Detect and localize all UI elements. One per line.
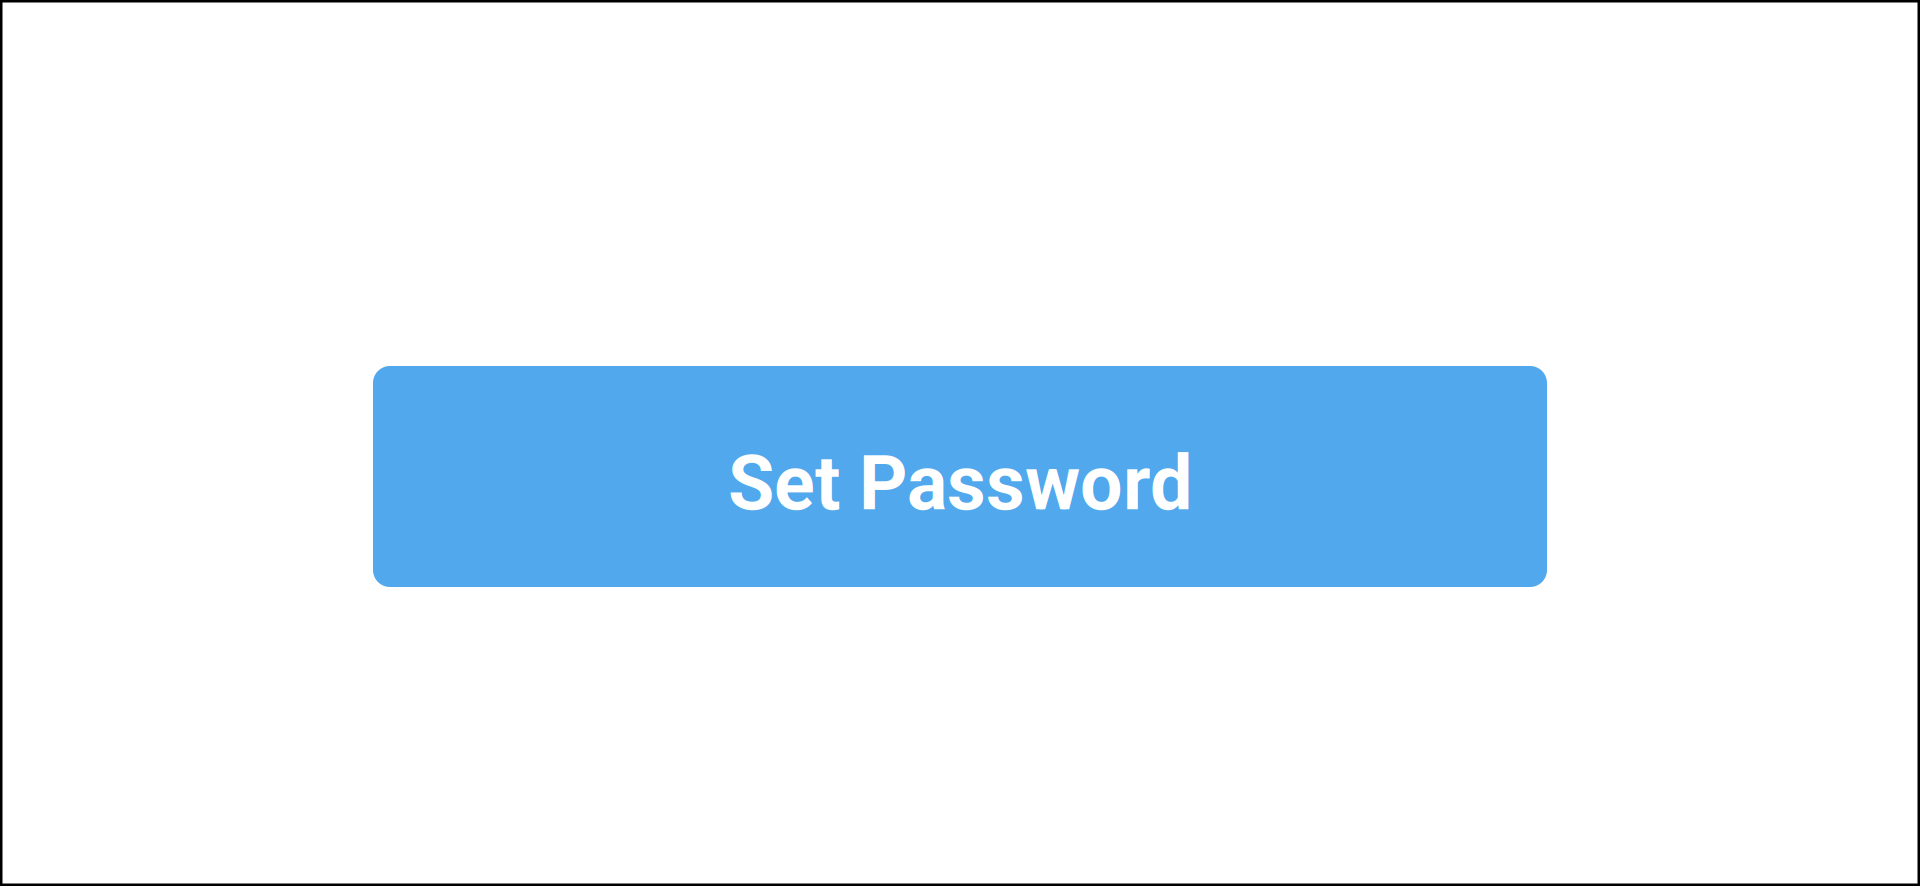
staticText: Set Password bbox=[728, 439, 1192, 528]
button[interactable]: Set Password bbox=[373, 366, 1547, 587]
